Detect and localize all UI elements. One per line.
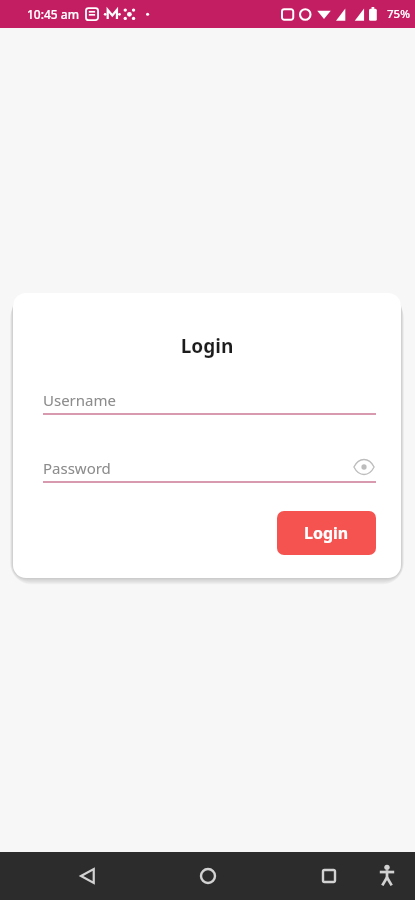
staticText: Login bbox=[304, 522, 349, 544]
button[interactable]: Show password bbox=[352, 455, 376, 479]
staticText: Password bbox=[43, 458, 111, 478]
button[interactable]: Login bbox=[277, 511, 376, 555]
button[interactable]: Accessibility bbox=[369, 858, 405, 894]
staticText: 10:45 am bbox=[27, 6, 80, 22]
button[interactable]: Password bbox=[43, 453, 376, 483]
button[interactable]: Username bbox=[43, 385, 376, 415]
staticText: Login bbox=[13, 333, 401, 359]
button[interactable]: Back bbox=[68, 856, 108, 896]
button[interactable]: Recent apps bbox=[309, 856, 349, 896]
button[interactable]: Home bbox=[188, 856, 228, 896]
staticText: Username bbox=[43, 390, 116, 410]
staticText: 75% bbox=[387, 6, 410, 22]
